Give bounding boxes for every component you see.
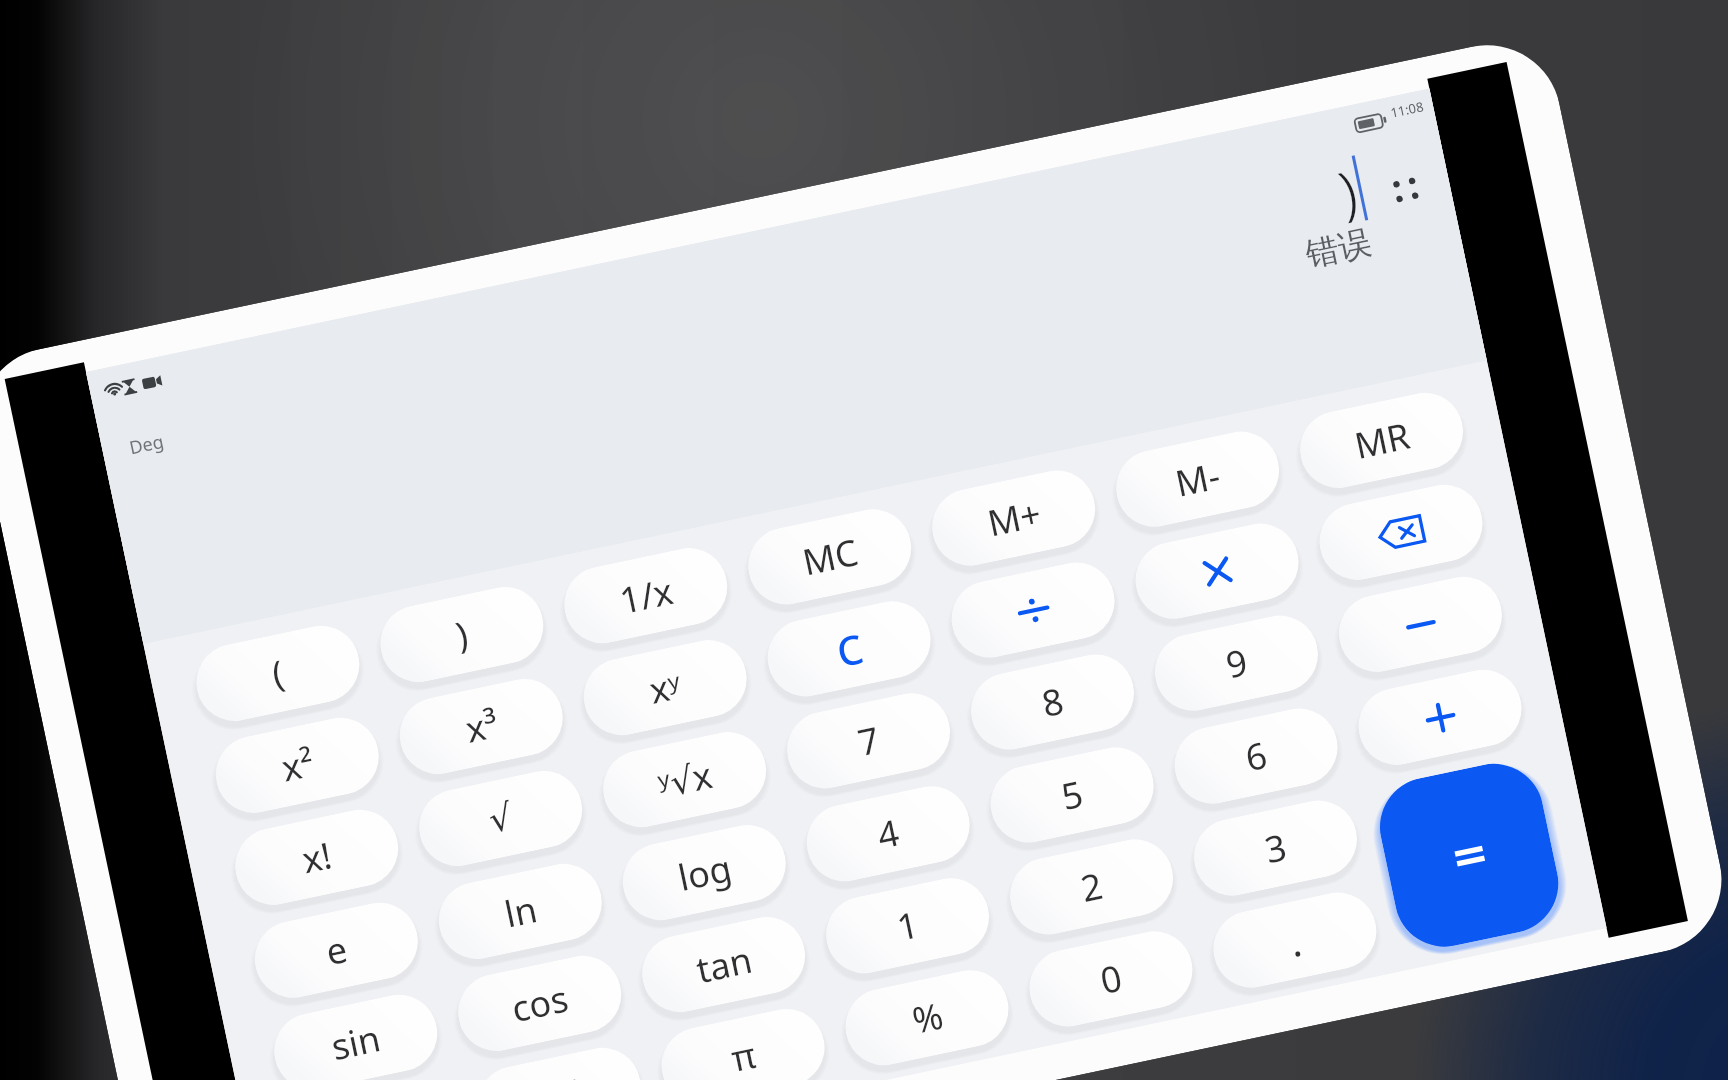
staticText: (	[267, 648, 288, 698]
staticText: MC	[798, 527, 863, 586]
staticText: ʸ√x	[654, 750, 717, 809]
button[interactable]: Divide	[944, 555, 1122, 665]
staticText: 7	[853, 715, 884, 767]
button[interactable]: MC	[741, 502, 918, 612]
button[interactable]: C	[760, 594, 938, 703]
button[interactable]: 6	[1167, 701, 1345, 811]
button[interactable]: 0	[1022, 924, 1200, 1034]
staticText: 1	[892, 900, 923, 952]
staticText: e	[321, 924, 352, 976]
button[interactable]: 1/x	[557, 541, 734, 650]
staticText: %	[908, 991, 947, 1045]
button[interactable]: 2	[1003, 832, 1180, 942]
staticText: xʸ	[645, 660, 685, 715]
staticText: 0	[1096, 953, 1126, 1005]
button[interactable]: ʸ√x	[596, 725, 773, 834]
staticText: tan	[692, 935, 757, 994]
staticText: Deg	[127, 429, 166, 460]
button[interactable]: tan	[635, 910, 812, 1019]
staticText: )	[451, 609, 472, 660]
button[interactable]: M+	[925, 463, 1102, 573]
button[interactable]: Plus	[1351, 663, 1529, 772]
button[interactable]: π	[654, 1002, 832, 1080]
button[interactable]: 4	[799, 779, 977, 888]
button[interactable]: )	[373, 580, 550, 689]
staticText: 6	[1241, 730, 1271, 782]
button[interactable]: xʸ	[576, 633, 754, 742]
staticText: π	[727, 1030, 760, 1080]
staticText: 9	[1221, 637, 1252, 689]
staticText: 3	[1260, 822, 1291, 874]
button[interactable]	[1371, 754, 1567, 956]
button[interactable]: 5	[983, 740, 1161, 850]
staticText: M+	[983, 488, 1046, 547]
staticText: MR	[1350, 410, 1414, 470]
button[interactable]: x²	[209, 711, 386, 820]
button[interactable]: 3	[1187, 793, 1364, 903]
staticText: M-	[1170, 451, 1225, 508]
staticText: 错误	[1302, 221, 1375, 276]
staticText: x³	[461, 699, 502, 754]
staticText: 4	[873, 808, 903, 860]
button[interactable]: x³	[393, 672, 570, 781]
staticText: sin	[327, 1013, 385, 1071]
staticText: 5	[1057, 769, 1087, 821]
button[interactable]: (	[189, 619, 366, 728]
staticText: 11:08	[1389, 97, 1426, 122]
button[interactable]: .	[1206, 885, 1383, 995]
button[interactable]: Multiply	[1128, 516, 1306, 626]
button[interactable]: sinh	[470, 1041, 648, 1080]
staticText: x²	[277, 738, 318, 793]
button[interactable]: 1	[819, 871, 996, 980]
staticText: √	[485, 796, 516, 842]
button[interactable]: 9	[1148, 608, 1325, 718]
button[interactable]: MR	[1293, 386, 1470, 495]
button[interactable]: x!	[228, 803, 405, 912]
button[interactable]: %	[838, 963, 1016, 1072]
staticText: 1/x	[615, 566, 678, 625]
button[interactable]: 7	[780, 686, 957, 795]
staticText: log	[673, 843, 736, 902]
staticText: ln	[500, 884, 541, 939]
button[interactable]: Backspace	[1312, 478, 1490, 587]
button[interactable]: sin	[267, 987, 444, 1080]
button[interactable]: ln	[432, 857, 609, 966]
button[interactable]: log	[615, 818, 793, 927]
button[interactable]: e	[248, 896, 425, 1005]
staticText: 8	[1037, 676, 1068, 728]
staticText: .	[1284, 913, 1306, 968]
button[interactable]: More options	[1384, 168, 1427, 211]
staticText: )	[1332, 150, 1365, 231]
staticText: x!	[297, 830, 336, 884]
staticText: 2	[1076, 861, 1107, 913]
button[interactable]: cos	[451, 949, 628, 1058]
button[interactable]: 8	[964, 647, 1141, 757]
staticText: C	[831, 620, 868, 678]
button[interactable]: M-	[1109, 424, 1286, 534]
staticText: cos	[507, 974, 573, 1033]
button[interactable]: √	[412, 764, 589, 873]
button[interactable]: Minus	[1332, 570, 1509, 679]
